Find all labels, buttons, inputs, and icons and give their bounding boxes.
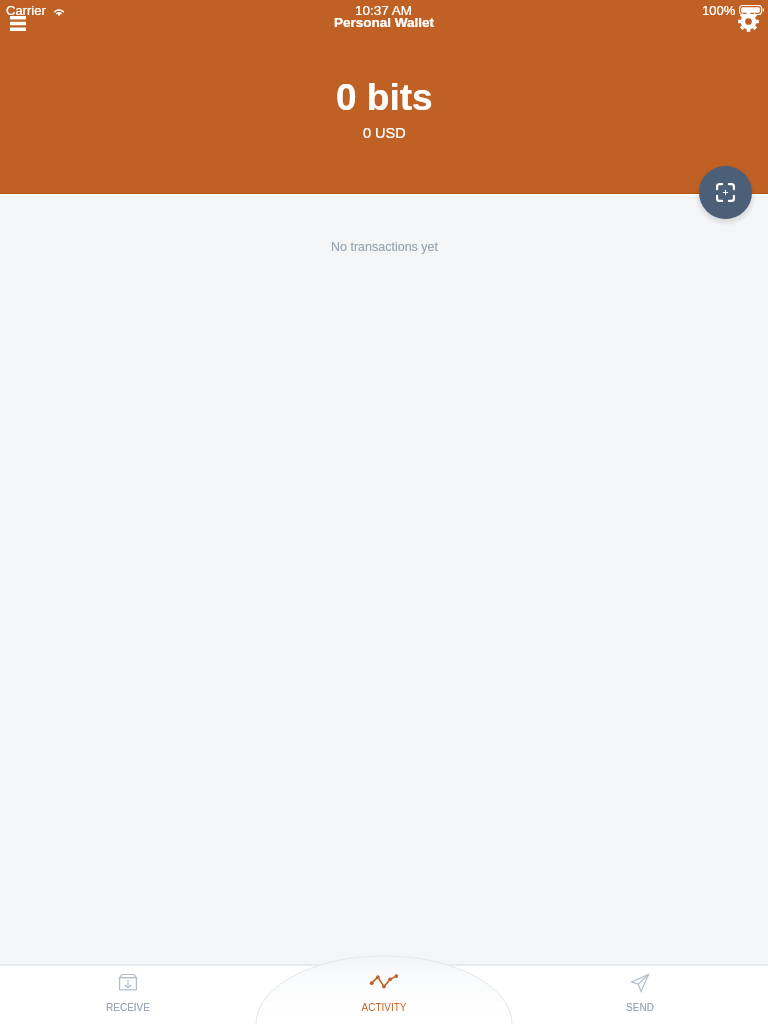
button[interactable]: Scan QR code [699,166,752,219]
staticText: SEND [626,1002,654,1013]
staticText: No transactions yet [331,240,438,254]
staticText: 0 bits [336,77,433,118]
staticText: ACTIVITY [361,1002,407,1013]
button[interactable]: ACTIVITY [256,965,512,1024]
button[interactable]: RECEIVE [0,965,256,1024]
staticText: 10:37 AM [355,3,413,18]
staticText: Carrier [6,3,46,18]
staticText: Personal Wallet [334,15,435,30]
staticText: 0 USD [363,125,406,141]
staticText: 100% [702,3,736,18]
button[interactable]: SEND [512,965,768,1024]
staticText: RECEIVE [106,1002,150,1013]
button[interactable]: Settings [730,4,766,40]
button[interactable]: Menu [0,0,36,36]
